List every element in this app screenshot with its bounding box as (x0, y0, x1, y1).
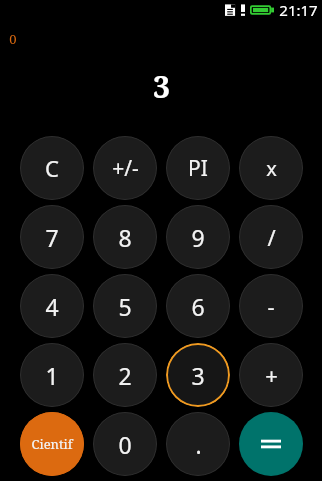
staticText: / (267, 222, 276, 252)
staticText: 7 (45, 222, 59, 253)
button[interactable]: +/- (93, 136, 157, 200)
staticText: 0 (9, 30, 17, 48)
staticText: x (266, 155, 277, 182)
button[interactable]: 7 (20, 205, 84, 269)
staticText: PI (188, 154, 208, 183)
staticText: 6 (191, 291, 205, 322)
button[interactable]: 8 (93, 205, 157, 269)
staticText: 9 (191, 222, 205, 253)
button[interactable]: . (166, 412, 230, 476)
button[interactable]: 9 (166, 205, 230, 269)
button[interactable]: + (239, 343, 303, 407)
other: No SIM card (225, 3, 239, 17)
button[interactable]: / (239, 205, 303, 269)
staticText: +/- (112, 154, 139, 183)
button[interactable]: 4 (20, 274, 84, 338)
button[interactable]: 5 (93, 274, 157, 338)
button[interactable]: 1 (20, 343, 84, 407)
staticText: 21:17 (279, 0, 318, 20)
staticText: Cientif (31, 435, 73, 453)
button[interactable]: PI (166, 136, 230, 200)
staticText: - (267, 291, 275, 321)
button[interactable]: x (239, 136, 303, 200)
staticText: 3 (191, 360, 205, 391)
button[interactable]: 3 (166, 343, 230, 407)
button[interactable]: 0 (93, 412, 157, 476)
staticText: 3 (153, 66, 170, 107)
staticText: C (45, 153, 59, 183)
staticText: . (195, 429, 202, 460)
staticText: 8 (118, 222, 132, 253)
staticText: 2 (118, 360, 132, 391)
button[interactable]: Cientif (20, 412, 84, 476)
button[interactable]: Equals (239, 412, 303, 476)
button[interactable]: C (20, 136, 84, 200)
other: Battery full (250, 4, 274, 16)
staticText: + (265, 360, 278, 390)
staticText: 0 (118, 429, 132, 460)
staticText: 4 (45, 291, 59, 322)
button[interactable]: 6 (166, 274, 230, 338)
staticText: 5 (118, 291, 132, 322)
button[interactable]: 2 (93, 343, 157, 407)
button[interactable]: - (239, 274, 303, 338)
staticText: 1 (45, 360, 59, 391)
